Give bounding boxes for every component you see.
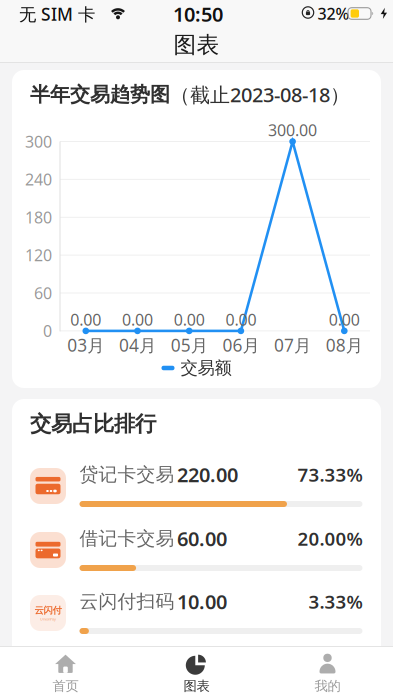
staticText: 交易额 <box>180 357 231 379</box>
staticText: 32% <box>317 3 349 24</box>
staticText: 云闪付 <box>34 605 61 616</box>
staticText: 无 SIM 卡 <box>19 2 95 25</box>
staticText: 贷记卡交易 <box>79 463 174 486</box>
staticText: 180 <box>25 207 52 228</box>
button[interactable]: 图表 <box>131 647 262 700</box>
staticText: 20.00% <box>297 526 362 551</box>
staticText: 73.33% <box>297 462 362 487</box>
staticText: 220.00 <box>177 461 238 488</box>
staticText: 图表 <box>173 31 219 59</box>
staticText: 半年交易趋势图 <box>30 82 170 107</box>
staticText: 0.00 <box>122 309 153 330</box>
staticText: UnionPay <box>40 616 56 622</box>
staticText: 120 <box>25 244 52 266</box>
staticText: 60.00 <box>177 525 227 552</box>
staticText: 图表 <box>183 678 209 694</box>
staticText: 03月 <box>67 333 104 356</box>
staticText: 云闪付扫码 <box>79 590 174 613</box>
staticText: 240 <box>25 169 52 190</box>
staticText: 0.00 <box>225 309 256 330</box>
staticText: 首页 <box>52 678 78 694</box>
staticText: 0.00 <box>70 309 101 330</box>
staticText: 0.00 <box>174 309 205 330</box>
staticText: 0.00 <box>329 309 360 330</box>
staticText: 60 <box>34 282 52 304</box>
staticText: 07月 <box>274 333 311 356</box>
staticText: 我的 <box>314 678 340 694</box>
staticText: 交易占比排行 <box>30 411 156 437</box>
staticText: 10:50 <box>173 1 223 27</box>
button[interactable]: 首页 <box>0 647 131 700</box>
staticText: 06月 <box>222 333 259 356</box>
staticText: 0 <box>43 320 52 341</box>
staticText: 借记卡交易 <box>79 527 174 550</box>
staticText: 300 <box>25 131 52 152</box>
button[interactable]: 我的 <box>262 647 393 700</box>
staticText: （截止2023-08-18） <box>170 81 350 108</box>
staticText: 04月 <box>119 333 156 356</box>
staticText: 10.00 <box>177 588 227 615</box>
staticText: 3.33% <box>308 589 362 614</box>
staticText: 300.00 <box>268 119 317 141</box>
staticText: 08月 <box>326 333 363 356</box>
staticText: 05月 <box>171 333 208 356</box>
